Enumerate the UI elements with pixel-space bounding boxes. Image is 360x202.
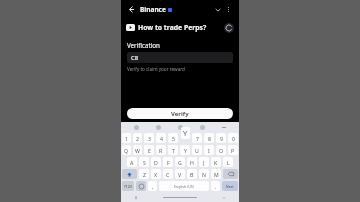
staticText: Verification xyxy=(127,41,160,49)
staticText: R xyxy=(159,147,163,154)
staticText: D xyxy=(154,159,158,166)
staticText: P xyxy=(231,147,235,154)
button[interactable]: Symbols xyxy=(122,181,134,191)
button[interactable]: K xyxy=(211,157,221,167)
staticText: E xyxy=(148,147,151,154)
staticText: U xyxy=(195,147,199,154)
button[interactable]: X xyxy=(151,169,161,179)
button[interactable]: 9 xyxy=(216,133,226,143)
button[interactable]: Shift xyxy=(122,169,137,179)
button[interactable]: I xyxy=(204,145,214,155)
button[interactable]: B xyxy=(187,169,197,179)
button[interactable]: E xyxy=(144,145,154,155)
button[interactable]: A xyxy=(127,157,137,167)
staticText: B xyxy=(190,171,194,178)
button[interactable]: More options xyxy=(223,4,234,15)
button[interactable]: 0 xyxy=(228,133,238,143)
staticText: T xyxy=(172,147,175,154)
button[interactable]: S xyxy=(139,157,149,167)
staticText: C8 xyxy=(131,54,139,62)
staticText: I xyxy=(208,147,210,154)
button[interactable]: N xyxy=(199,169,209,179)
staticText: N xyxy=(202,171,206,178)
staticText: 3 xyxy=(148,135,151,142)
staticText: H xyxy=(190,159,194,166)
button[interactable]: Settings xyxy=(147,122,169,132)
button[interactable]: Home xyxy=(150,193,209,202)
button[interactable]: P xyxy=(228,145,238,155)
button[interactable]: 4 xyxy=(156,133,166,143)
button[interactable]: Expand xyxy=(212,4,223,15)
button[interactable]: , xyxy=(148,181,157,191)
button[interactable]: 2 xyxy=(133,133,142,143)
staticText: Next xyxy=(226,184,234,189)
button[interactable]: Q xyxy=(122,145,131,155)
button[interactable]: 1 xyxy=(122,133,131,143)
button[interactable]: . xyxy=(211,181,220,191)
button[interactable]: 3 xyxy=(144,133,154,143)
staticText: F xyxy=(167,159,170,166)
button[interactable]: O xyxy=(216,145,226,155)
button[interactable]: 8 xyxy=(204,133,214,143)
staticText: L xyxy=(227,159,230,166)
button[interactable]: Y xyxy=(180,145,190,155)
button[interactable]: Hide keyboard xyxy=(209,193,239,202)
button[interactable]: Clipboard xyxy=(169,122,191,132)
button[interactable]: English (US) xyxy=(159,181,209,191)
staticText: S xyxy=(143,159,146,166)
button[interactable]: 5 xyxy=(168,133,178,143)
button[interactable]: 7 xyxy=(192,133,202,143)
staticText: 8 xyxy=(208,135,211,142)
button[interactable]: L xyxy=(223,157,233,167)
button[interactable]: Refresh xyxy=(224,23,234,33)
staticText: Y xyxy=(184,147,187,154)
button[interactable]: Voice xyxy=(191,122,213,132)
staticText: Verify to claim your reward xyxy=(127,66,185,72)
button[interactable]: More xyxy=(213,122,235,132)
staticText: How to trade Perps? xyxy=(138,23,207,32)
staticText: X xyxy=(154,171,158,178)
staticText: 2 xyxy=(136,135,139,142)
staticText: ?123 xyxy=(124,184,132,189)
staticText: G xyxy=(178,159,182,166)
button[interactable]: R xyxy=(156,145,166,155)
staticText: M xyxy=(214,171,219,178)
button[interactable]: M xyxy=(211,169,221,179)
staticText: 0 xyxy=(232,135,235,142)
button[interactable]: Emoji xyxy=(125,122,147,132)
button[interactable]: D xyxy=(151,157,161,167)
button[interactable]: How to trade Perps? xyxy=(126,23,221,32)
staticText: Y xyxy=(183,128,188,138)
button[interactable]: Verify xyxy=(127,108,233,119)
button[interactable]: C xyxy=(163,169,173,179)
button[interactable]: Backspace xyxy=(223,169,238,179)
staticText: , xyxy=(152,183,154,190)
staticText: 9 xyxy=(220,135,223,142)
button[interactable]: F xyxy=(163,157,173,167)
button[interactable]: H xyxy=(187,157,197,167)
button[interactable]: Enter xyxy=(222,181,238,191)
button[interactable]: U xyxy=(192,145,202,155)
button[interactable]: Z xyxy=(139,169,149,179)
staticText: Z xyxy=(143,171,146,178)
button[interactable]: W xyxy=(133,145,142,155)
staticText: W xyxy=(135,147,140,154)
button[interactable]: Emoji xyxy=(136,181,146,191)
button[interactable]: T xyxy=(168,145,178,155)
staticText: . xyxy=(215,183,217,190)
button[interactable]: Binance xyxy=(140,5,172,14)
staticText: Q xyxy=(124,147,129,154)
staticText: C xyxy=(166,171,170,178)
staticText: J xyxy=(203,159,205,166)
staticText: Verify xyxy=(171,110,189,118)
button[interactable]: C8 xyxy=(127,52,233,63)
staticText: English (US) xyxy=(174,184,194,189)
staticText: A xyxy=(130,159,134,166)
button[interactable]: V xyxy=(175,169,185,179)
button[interactable]: Back xyxy=(126,4,137,15)
button[interactable]: G xyxy=(175,157,185,167)
staticText: 5 xyxy=(172,135,175,142)
button[interactable]: Voice input xyxy=(121,193,150,202)
button[interactable]: J xyxy=(199,157,209,167)
staticText: O xyxy=(219,147,224,154)
